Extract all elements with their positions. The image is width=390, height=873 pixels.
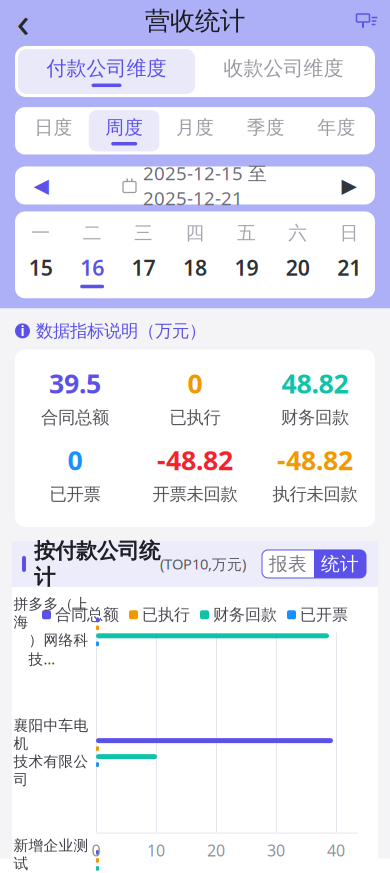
button[interactable]: 收款公司维度 bbox=[195, 49, 372, 94]
staticText: 日 bbox=[340, 221, 359, 244]
button[interactable]: 周度 bbox=[89, 110, 160, 151]
staticText: 日度 bbox=[34, 116, 72, 139]
staticText: 开票未回款 bbox=[152, 484, 237, 505]
button[interactable]: 一 bbox=[15, 221, 66, 288]
button[interactable]: 返回 bbox=[0, 1, 46, 41]
staticText: 48.82 bbox=[281, 365, 348, 401]
staticText: 二 bbox=[83, 221, 102, 244]
staticText: 2025-12-15 至 2025-12-21 bbox=[143, 161, 267, 210]
staticText: 0 bbox=[187, 365, 202, 401]
button[interactable]: 月度 bbox=[160, 110, 230, 151]
staticText: -48.82 bbox=[157, 442, 233, 478]
button[interactable]: 三 bbox=[118, 221, 169, 288]
staticText: 技术有限公司 bbox=[13, 753, 88, 789]
staticText: 三 bbox=[134, 221, 153, 244]
staticText: ▶ bbox=[341, 174, 356, 197]
staticText: 季度 bbox=[247, 116, 285, 139]
staticText: i bbox=[20, 322, 24, 340]
staticText: 已执行 bbox=[142, 605, 190, 625]
staticText: 18 bbox=[183, 253, 207, 282]
button[interactable]: 报表 bbox=[262, 550, 314, 578]
staticText: 按付款公司统计 bbox=[34, 538, 160, 590]
staticText: 六 bbox=[288, 221, 307, 244]
staticText: 合同总额 bbox=[41, 407, 109, 428]
staticText: 39.5 bbox=[49, 365, 101, 401]
button[interactable]: 季度 bbox=[230, 110, 301, 151]
staticText: 周度 bbox=[105, 116, 143, 139]
staticText: 已执行 bbox=[169, 407, 220, 428]
staticText: 营收统计 bbox=[145, 5, 245, 36]
staticText: 收款公司维度 bbox=[223, 56, 343, 81]
button[interactable]: 付款公司维度 bbox=[18, 49, 195, 94]
staticText: 30 bbox=[267, 840, 285, 861]
staticText: 16 bbox=[80, 253, 104, 282]
staticText: 合同总额 bbox=[55, 605, 119, 625]
button[interactable]: 统计 bbox=[314, 550, 366, 578]
staticText: 新增企业测试 bbox=[13, 837, 88, 873]
staticText: 数据指标说明（万元） bbox=[36, 320, 206, 342]
button[interactable]: 六 bbox=[272, 221, 323, 288]
staticText: 拼多多（上海 bbox=[13, 595, 88, 631]
staticText: 报表 bbox=[269, 552, 307, 575]
staticText: 17 bbox=[132, 253, 156, 282]
staticText: 21 bbox=[337, 253, 361, 282]
staticText: -48.82 bbox=[277, 442, 353, 478]
button[interactable]: 筛选 bbox=[344, 1, 390, 41]
staticText: 15 bbox=[29, 253, 53, 282]
staticText: 财务回款 bbox=[213, 605, 277, 625]
button[interactable]: 日 bbox=[324, 221, 375, 288]
staticText: 财务回款 bbox=[281, 407, 349, 428]
staticText: 月度 bbox=[176, 116, 214, 139]
staticText: 19 bbox=[234, 253, 258, 282]
button[interactable]: 下一周 bbox=[323, 167, 375, 203]
staticText: 已开票 bbox=[49, 484, 100, 505]
staticText: ）网络科技… bbox=[28, 631, 88, 669]
staticText: 已开票 bbox=[300, 605, 348, 625]
staticText: 年度 bbox=[318, 116, 356, 139]
button[interactable]: 二 bbox=[66, 221, 118, 288]
staticText: 四 bbox=[185, 221, 204, 244]
staticText: 20 bbox=[207, 840, 225, 861]
staticText: 五 bbox=[237, 221, 256, 244]
staticText: 40 bbox=[327, 840, 345, 861]
button[interactable]: 日度 bbox=[18, 110, 89, 151]
staticText: 付款公司维度 bbox=[46, 56, 166, 81]
staticText: 襄阳中车电机 bbox=[13, 717, 88, 753]
staticText: (TOP10,万元) bbox=[160, 554, 246, 574]
staticText: ‹ bbox=[16, 0, 29, 49]
staticText: 一 bbox=[31, 221, 50, 244]
staticText: 20 bbox=[286, 253, 310, 282]
staticText: 0 bbox=[91, 840, 100, 861]
staticText: 执行未回款 bbox=[272, 484, 357, 505]
staticText: 0 bbox=[67, 442, 82, 478]
staticText: 10 bbox=[147, 840, 165, 861]
button[interactable]: 五 bbox=[221, 221, 272, 288]
button[interactable]: 上一周 bbox=[15, 167, 67, 203]
staticText: 统计 bbox=[321, 552, 359, 575]
button[interactable]: 四 bbox=[169, 221, 221, 288]
staticText: ◀ bbox=[33, 174, 48, 197]
button[interactable]: 年度 bbox=[301, 110, 372, 151]
